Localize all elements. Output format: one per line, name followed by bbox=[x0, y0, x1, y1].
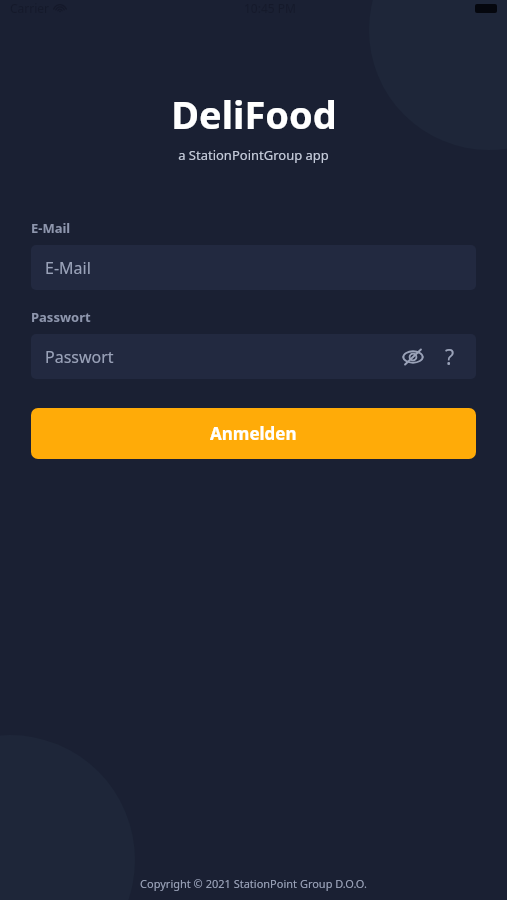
button[interactable]: E-Mail bbox=[31, 245, 476, 290]
staticText: Passwort bbox=[45, 346, 114, 368]
staticText: E-Mail bbox=[31, 219, 71, 237]
button[interactable]: Password help bbox=[434, 341, 466, 373]
staticText: ? bbox=[445, 343, 455, 372]
button[interactable]: Passwort bbox=[45, 334, 396, 379]
button[interactable]: Show password bbox=[396, 340, 430, 374]
staticText: Copyright © 2021 StationPoint Group D.O.… bbox=[140, 876, 367, 891]
staticText: E-Mail bbox=[45, 257, 91, 279]
staticText: Anmelden bbox=[210, 422, 297, 445]
button[interactable]: Anmelden bbox=[31, 408, 476, 459]
staticText: a StationPointGroup app bbox=[178, 146, 329, 164]
staticText: Passwort bbox=[31, 308, 91, 326]
staticText: DeliFood bbox=[171, 88, 337, 140]
